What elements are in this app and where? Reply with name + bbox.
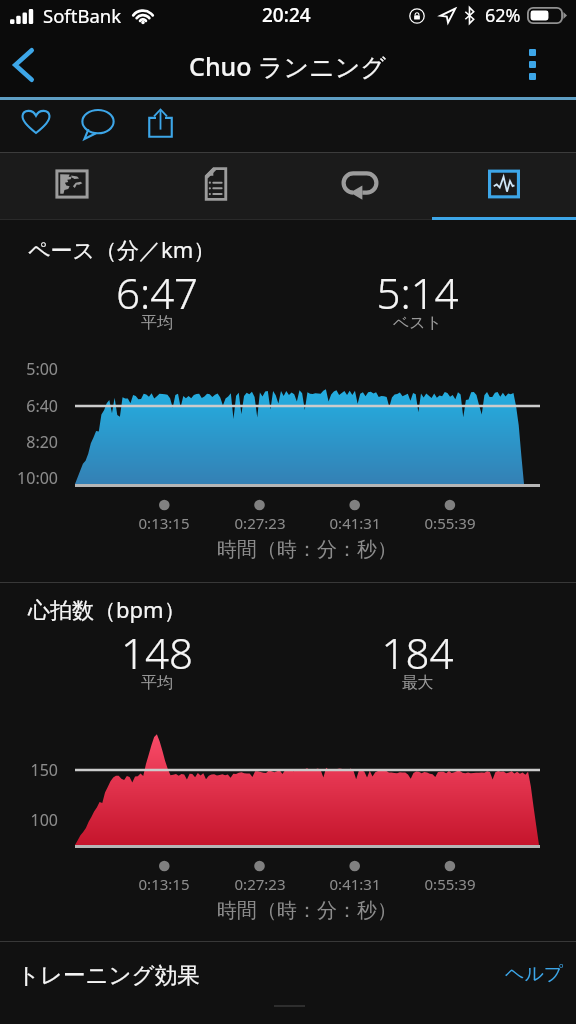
button[interactable]: Map: [0, 152, 144, 218]
button[interactable]: Comment: [67, 100, 129, 152]
staticText: 心拍数（bpm）: [28, 594, 186, 624]
button[interactable]: More options: [494, 36, 576, 97]
staticText: 0:41:31: [300, 513, 410, 533]
staticText: 0:27:23: [205, 513, 315, 533]
staticText: 150: [0, 759, 58, 781]
staticText: 5:14: [287, 264, 548, 321]
staticText: 0:13:15: [109, 513, 219, 533]
staticText: 0:41:31: [300, 874, 410, 894]
button[interactable]: Back: [0, 36, 46, 97]
staticText: ヘルプ: [505, 962, 564, 986]
button[interactable]: Details: [144, 152, 288, 218]
staticText: 20:24: [262, 2, 311, 28]
staticText: 5:00: [0, 358, 58, 380]
staticText: ペース（分／km）: [28, 234, 216, 264]
staticText: トレーニング効果: [17, 961, 200, 989]
staticText: 6:47: [27, 264, 287, 321]
staticText: 184: [287, 624, 548, 681]
staticText: 0:55:39: [395, 513, 505, 533]
staticText: ベスト: [287, 313, 548, 333]
staticText: 10:00: [0, 467, 58, 489]
staticText: 平均: [27, 673, 287, 693]
staticText: SoftBank: [43, 3, 122, 28]
staticText: 100: [0, 809, 58, 831]
staticText: 62%: [485, 3, 521, 28]
staticText: 8:20: [0, 431, 58, 453]
button[interactable]: Laps: [288, 152, 432, 218]
staticText: 最大: [287, 673, 548, 693]
staticText: Chuo ランニング: [189, 49, 386, 83]
staticText: 148: [27, 624, 287, 681]
button[interactable]: Share: [129, 100, 191, 152]
button[interactable]: トレーニング効果: [0, 942, 576, 1024]
staticText: 6:40: [0, 395, 58, 417]
staticText: 0:27:23: [205, 874, 315, 894]
button[interactable]: Charts: [432, 152, 576, 218]
staticText: 0:55:39: [395, 874, 505, 894]
staticText: 0:13:15: [109, 874, 219, 894]
staticText: 時間（時：分：秒）: [50, 537, 564, 562]
staticText: 時間（時：分：秒）: [50, 898, 564, 923]
button[interactable]: Like: [5, 100, 67, 152]
staticText: 平均: [27, 313, 287, 333]
